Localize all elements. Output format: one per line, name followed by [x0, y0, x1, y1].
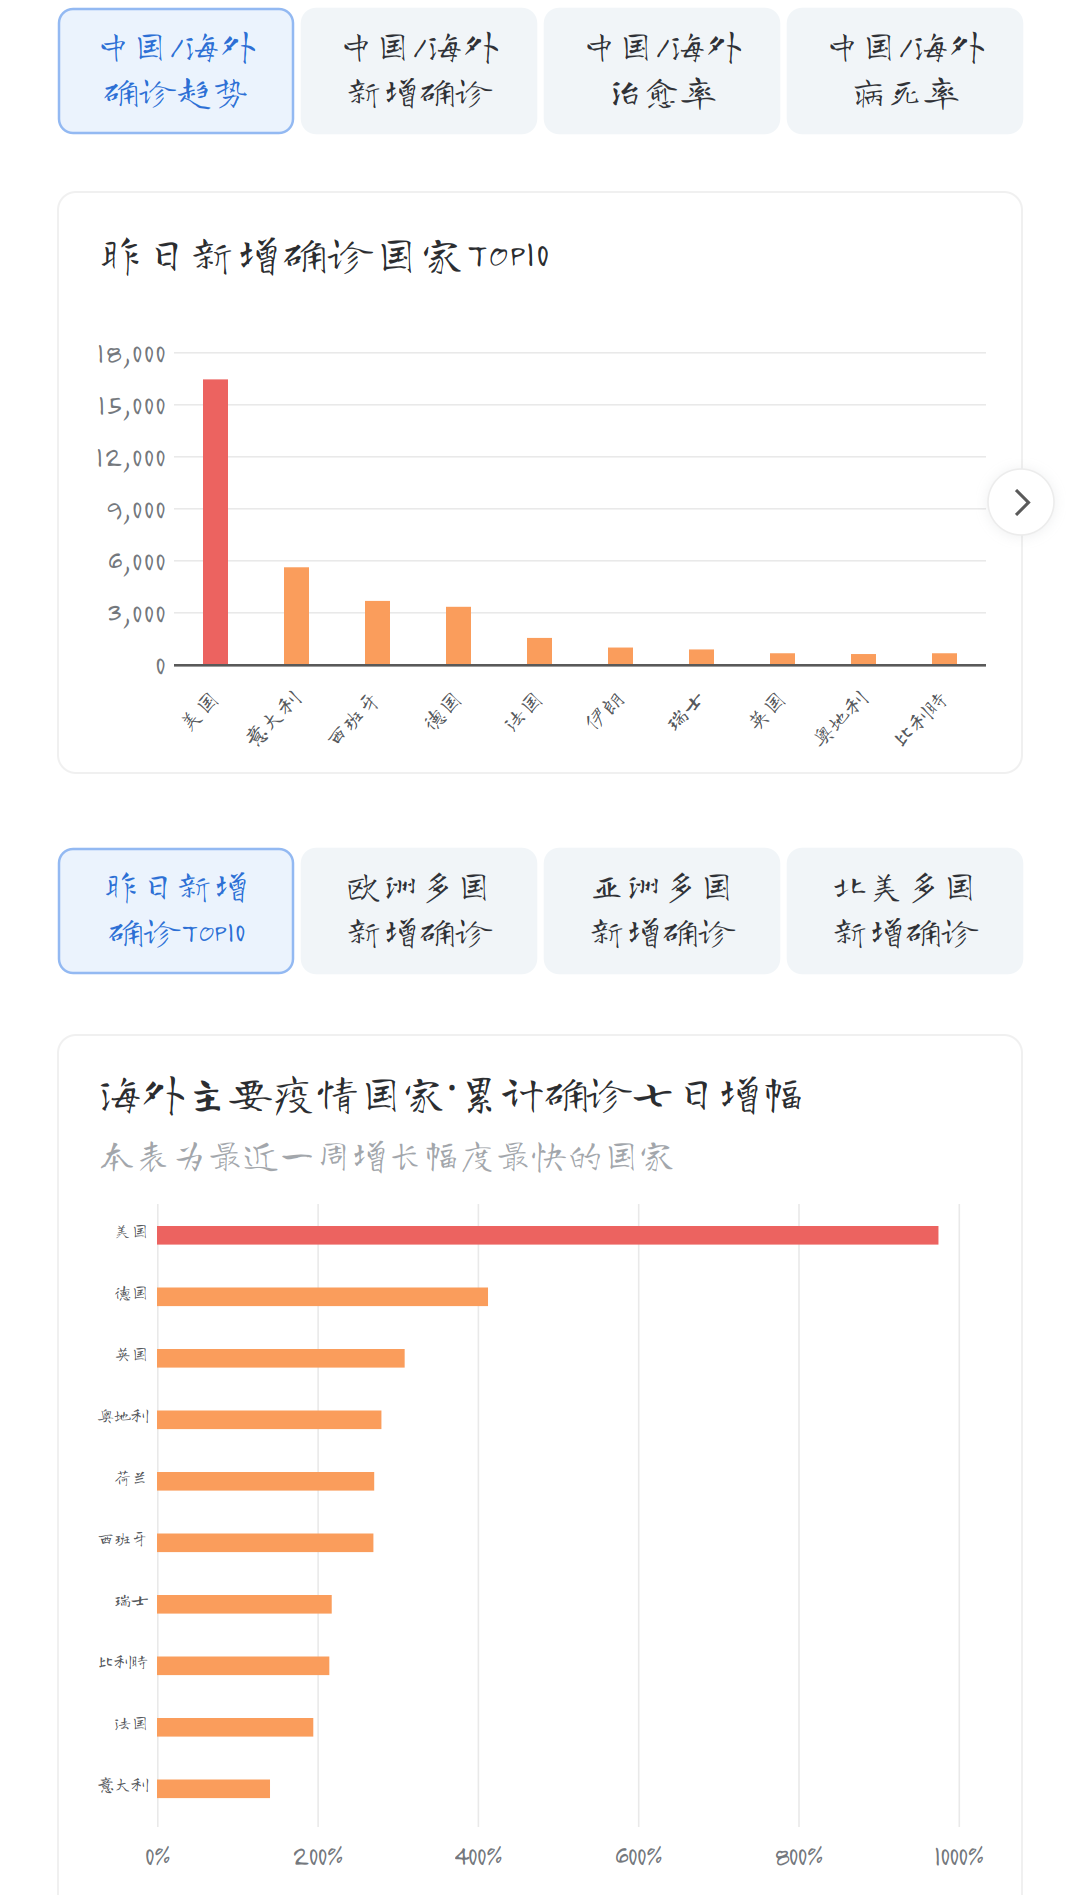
staticText: 昨日新增确诊国家TOP10: [99, 232, 547, 275]
staticText: 新增确诊: [590, 913, 734, 948]
staticText: 3,000: [107, 594, 164, 629]
staticText: 瑞士: [654, 683, 700, 705]
staticText: 奥地利: [97, 1406, 148, 1423]
staticText: 欧洲多国: [347, 868, 491, 902]
staticText: 英国: [114, 1345, 148, 1362]
button[interactable]: 昨日新增: [59, 849, 293, 973]
staticText: 确诊趋势: [104, 73, 248, 108]
staticText: 意大利: [97, 1775, 148, 1792]
button[interactable]: 中国/海外: [788, 9, 1022, 133]
staticText: 德国: [411, 683, 457, 705]
staticText: 美国: [114, 1222, 148, 1239]
staticText: 400%: [454, 1838, 502, 1872]
staticText: 荷兰: [114, 1468, 148, 1485]
staticText: 15,000: [98, 386, 164, 421]
staticText: 法国: [114, 1714, 148, 1731]
button[interactable]: 北美多国: [788, 849, 1022, 973]
staticText: 海外主要疫情国家·累计确诊七日增幅: [99, 1057, 804, 1115]
staticText: 亚洲多国: [590, 868, 734, 902]
staticText: 病死率: [851, 73, 959, 108]
staticText: 北美多国: [833, 868, 977, 902]
staticText: 中国/海外: [96, 28, 256, 62]
button[interactable]: 亚洲多国: [545, 849, 779, 973]
staticText: 昨日新增: [104, 868, 248, 902]
staticText: 西班牙: [307, 683, 376, 705]
button[interactable]: 中国/海外: [59, 9, 293, 133]
staticText: 法国: [492, 683, 538, 705]
staticText: 英国: [735, 683, 781, 705]
staticText: 0%: [144, 1838, 169, 1872]
staticText: 600%: [614, 1838, 661, 1872]
staticText: 新增确诊: [833, 913, 977, 948]
button[interactable]: 中国/海外: [302, 9, 536, 133]
staticText: 0: [155, 646, 164, 681]
staticText: 治愈率: [608, 73, 716, 108]
staticText: 9,000: [106, 490, 164, 525]
button[interactable]: Next chart: [988, 469, 1054, 535]
staticText: 比利时: [874, 683, 943, 705]
staticText: 中国/海外: [339, 28, 499, 62]
staticText: 中国/海外: [825, 28, 985, 62]
button[interactable]: 欧洲多国: [302, 849, 536, 973]
staticText: 6,000: [108, 542, 164, 577]
staticText: 伊朗: [573, 683, 619, 705]
staticText: 确诊TOP10: [108, 913, 244, 948]
staticText: 奥地利: [793, 683, 862, 705]
staticText: 比利时: [97, 1652, 148, 1669]
staticText: 瑞士: [114, 1591, 148, 1608]
staticText: 本表为最近一周增长幅度最快的国家: [99, 1136, 675, 1172]
staticText: 12,000: [96, 438, 164, 473]
staticText: 新增确诊: [347, 73, 491, 108]
staticText: 18,000: [97, 334, 164, 369]
staticText: 新增确诊: [347, 913, 491, 948]
staticText: 美国: [168, 683, 214, 705]
button[interactable]: 中国/海外: [545, 9, 779, 133]
staticText: 西班牙: [97, 1529, 148, 1546]
staticText: 800%: [774, 1838, 822, 1872]
staticText: 1000%: [934, 1838, 983, 1872]
staticText: 德国: [114, 1283, 148, 1300]
staticText: 中国/海外: [582, 28, 742, 62]
staticText: 200%: [292, 1838, 342, 1872]
staticText: 意大利: [226, 683, 295, 705]
